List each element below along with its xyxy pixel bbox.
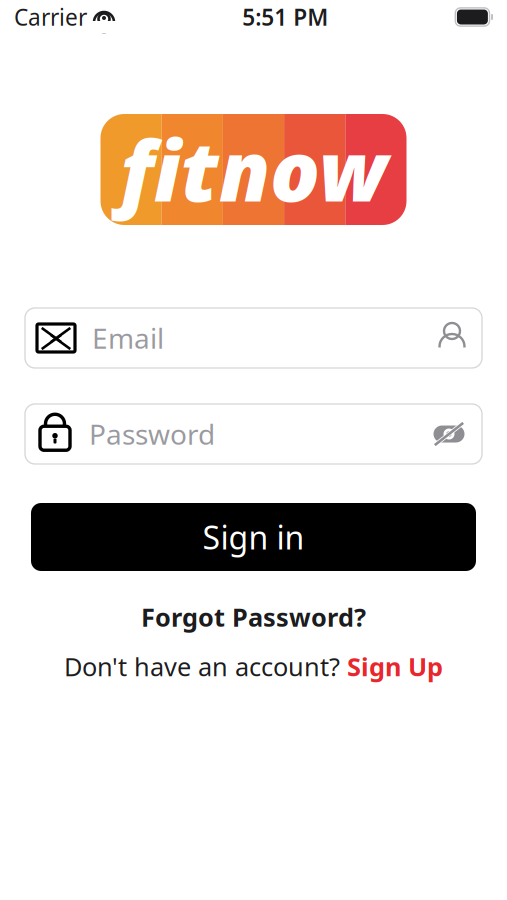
staticText: fitnow [120, 115, 387, 224]
staticText: Forgot Password? [141, 600, 366, 634]
button[interactable]: Sign Up [347, 647, 443, 686]
staticText: Email [92, 319, 164, 357]
button[interactable]: Sign in [31, 503, 476, 571]
staticText: Sign in [202, 516, 304, 558]
staticText: 5:51 PM [242, 2, 328, 32]
staticText: Don't have an account? [64, 650, 347, 683]
button[interactable]: Forgot Password? [133, 597, 374, 637]
staticText: Password [89, 415, 215, 453]
staticText: Carrier [14, 2, 87, 32]
staticText: Sign Up [347, 650, 443, 683]
